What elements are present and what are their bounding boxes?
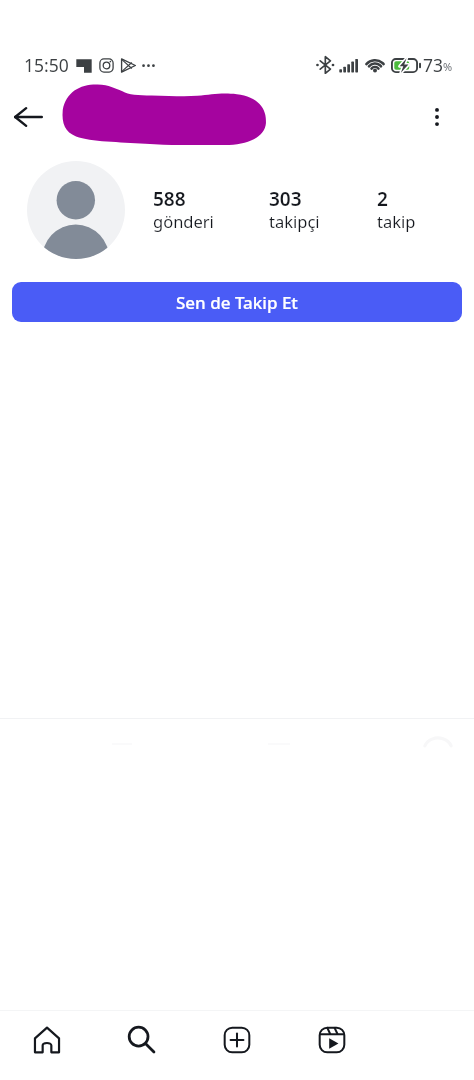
button[interactable]: Back (8, 97, 48, 137)
button[interactable]: Home (0, 1011, 94, 1068)
staticText: % (443, 59, 453, 74)
button[interactable]: 303 (269, 186, 320, 234)
button[interactable]: Create (189, 1011, 284, 1068)
button[interactable]: 2 (377, 186, 416, 234)
button[interactable]: 588 (153, 186, 214, 234)
button[interactable]: More options (419, 99, 455, 135)
staticText: takip (377, 210, 416, 232)
staticText: 15:50 (24, 53, 69, 77)
button[interactable]: Reels (284, 1011, 379, 1068)
staticText: 303 (269, 186, 302, 212)
button[interactable]: Sen de Takip Et (12, 282, 462, 322)
staticText: gönderi (153, 210, 214, 232)
staticText: 73 (423, 53, 444, 77)
button[interactable]: Search (94, 1011, 189, 1068)
staticText: takipçi (269, 210, 320, 232)
button[interactable]: Profile photo (27, 161, 125, 259)
staticText: Sen de Takip Et (176, 291, 298, 314)
staticText: 2 (377, 186, 388, 212)
staticText: 588 (153, 186, 186, 212)
